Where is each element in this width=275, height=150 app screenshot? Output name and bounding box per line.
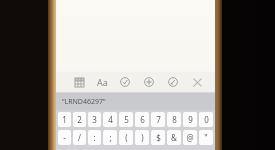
staticText: 0 <box>204 114 209 125</box>
button[interactable]: Insert <box>138 72 160 92</box>
button[interactable]: 3 <box>88 112 101 127</box>
staticText: ( <box>125 132 128 143</box>
button[interactable]: 7 <box>151 112 165 127</box>
button[interactable]: Table <box>68 72 90 92</box>
staticText: & <box>171 132 177 143</box>
button[interactable]: / <box>73 130 86 145</box>
button[interactable]: : <box>88 130 101 145</box>
button[interactable]: “LRND46297” <box>56 93 120 110</box>
button[interactable]: Checklist <box>114 72 136 92</box>
button[interactable]: @ <box>183 130 197 145</box>
staticText: @ <box>186 132 194 143</box>
button[interactable]: - <box>58 130 71 145</box>
button[interactable]: Aa <box>91 72 113 92</box>
button[interactable]: Close keyboard <box>185 72 209 92</box>
staticText: 5 <box>124 114 129 125</box>
button[interactable]: ; <box>103 130 117 145</box>
staticText: 4 <box>108 114 113 125</box>
button[interactable]: 9 <box>183 112 197 127</box>
button[interactable]: Markup <box>162 72 184 92</box>
staticText: 7 <box>156 114 161 125</box>
button[interactable]: 4 <box>103 112 117 127</box>
staticText: “LRND46297” <box>62 97 106 107</box>
staticText: 8 <box>172 114 177 125</box>
button[interactable]: 5 <box>119 112 133 127</box>
button[interactable]: ( <box>119 130 133 145</box>
staticText: / <box>78 132 81 143</box>
button[interactable]: 0 <box>199 112 213 127</box>
staticText: 6 <box>140 114 145 125</box>
button[interactable]: 8 <box>167 112 181 127</box>
staticText: " <box>204 132 208 143</box>
staticText: 3 <box>92 114 97 125</box>
staticText: 2 <box>77 114 82 125</box>
button[interactable]: 1 <box>58 112 71 127</box>
staticText: - <box>63 132 66 143</box>
staticText: 9 <box>188 114 193 125</box>
staticText: $ <box>156 132 161 143</box>
button[interactable]: 6 <box>135 112 149 127</box>
staticText: 1 <box>62 114 67 125</box>
button[interactable]: " <box>199 130 213 145</box>
staticText: : <box>93 132 96 143</box>
staticText: ; <box>109 132 112 143</box>
button[interactable]: & <box>167 130 181 145</box>
button[interactable]: ) <box>135 130 149 145</box>
button[interactable]: 2 <box>73 112 86 127</box>
staticText: Aa <box>97 76 108 88</box>
button[interactable]: $ <box>151 130 165 145</box>
staticText: ) <box>141 132 144 143</box>
